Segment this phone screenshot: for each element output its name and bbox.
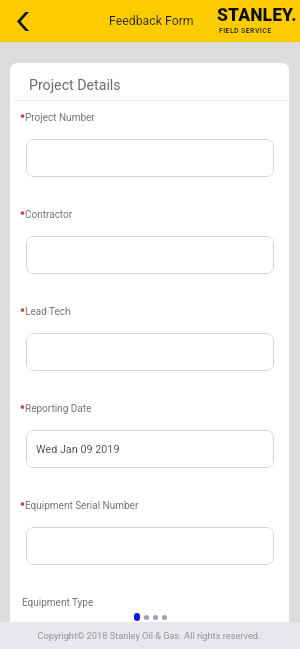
button[interactable] (26, 236, 274, 274)
button[interactable]: Page 3 (153, 615, 158, 620)
staticText: STANLEY. (217, 5, 297, 26)
staticText: Wed Jan 09 2019 (36, 443, 120, 456)
button[interactable]: Back (9, 7, 37, 35)
button[interactable]: Page 2 (144, 615, 149, 620)
staticText: Equipment Serial Number (25, 500, 139, 512)
staticText: Lead Tech (25, 306, 71, 318)
button[interactable] (26, 333, 274, 371)
staticText: Feedback Form (109, 14, 194, 28)
staticText: FIELD SERVICE (219, 26, 272, 34)
staticText: Equipment Type (22, 597, 94, 609)
button[interactable]: Page 1 (134, 613, 140, 621)
button[interactable]: Wed Jan 09 2019 (26, 430, 274, 468)
staticText: Reporting Date (25, 403, 92, 415)
button[interactable]: Page 4 (162, 615, 167, 620)
button[interactable] (26, 139, 274, 177)
button[interactable] (26, 527, 274, 565)
staticText: Project Details (29, 77, 121, 94)
staticText: Contractor (25, 209, 73, 221)
staticText: Copyright© 2018 Stanley Oil & Gas. All r… (37, 630, 261, 641)
staticText: Project Number (25, 112, 95, 124)
